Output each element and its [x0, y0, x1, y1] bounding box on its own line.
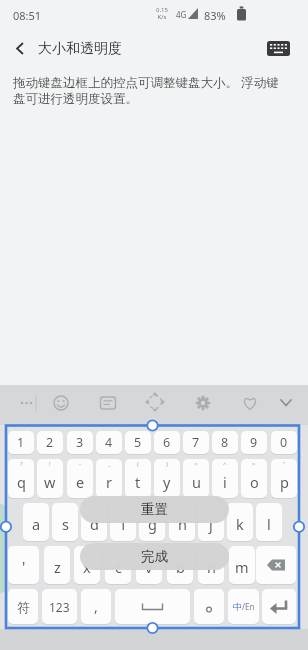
button[interactable]: 中 [228, 589, 259, 624]
button[interactable] [115, 589, 190, 624]
staticText: 4G [176, 9, 187, 20]
staticText: 0.15 K/s [156, 6, 168, 20]
staticText: 中 [233, 601, 242, 612]
button[interactable] [238, 390, 262, 418]
button[interactable]: m [229, 546, 255, 584]
staticText: w [44, 472, 56, 492]
staticText: 7 [192, 434, 200, 451]
staticText: b [176, 557, 185, 577]
button[interactable] [6, 36, 34, 60]
staticText: n [207, 557, 216, 577]
button[interactable]: 7 [183, 431, 209, 454]
button[interactable]: 8 [212, 431, 238, 454]
button[interactable]: _ [96, 459, 122, 498]
staticText: i [223, 472, 227, 492]
button[interactable] [191, 390, 215, 418]
button[interactable]: 1 [8, 431, 34, 454]
button[interactable]: ' [8, 546, 39, 584]
staticText: k [236, 514, 244, 534]
staticText: g [148, 514, 157, 534]
button[interactable]: g [139, 503, 165, 541]
staticText: ? [20, 460, 23, 468]
staticText: " [283, 460, 286, 468]
button[interactable]: 6 [154, 431, 180, 454]
button[interactable]: 0 [271, 431, 297, 454]
button[interactable]: v [136, 546, 162, 584]
button[interactable] [49, 390, 73, 418]
staticText: 3 [76, 434, 84, 451]
button[interactable]: x [74, 546, 100, 584]
staticText: m [235, 557, 249, 577]
button[interactable] [262, 589, 296, 624]
button[interactable]: d [81, 503, 107, 541]
button[interactable]: " [271, 459, 297, 498]
staticText: c [115, 557, 122, 577]
staticText: y [163, 472, 171, 492]
button[interactable]: 2 [37, 431, 63, 454]
button[interactable] [143, 390, 167, 418]
button[interactable]: , [81, 589, 111, 624]
staticText: u [192, 472, 201, 492]
button[interactable] [16, 390, 40, 418]
button[interactable]: b [167, 546, 193, 584]
button[interactable]: c [105, 546, 131, 584]
button[interactable]: 5 [125, 431, 151, 454]
button[interactable]: 3 [67, 431, 93, 454]
button[interactable] [256, 546, 296, 584]
button[interactable]: a [23, 503, 49, 541]
staticText: f [121, 514, 126, 534]
button[interactable] [263, 38, 295, 60]
staticText: s [62, 514, 69, 534]
staticText: 完成 [141, 548, 168, 565]
button[interactable]: < [183, 459, 209, 498]
staticText: z [54, 557, 61, 577]
staticText: x [83, 557, 91, 577]
button[interactable]: 重置 [80, 496, 229, 523]
button[interactable]: n [198, 546, 224, 584]
staticText: 83% [204, 8, 226, 23]
staticText: j [209, 514, 213, 534]
button[interactable]: ^ [212, 459, 238, 498]
staticText: l [267, 514, 271, 534]
button[interactable]: 符 [8, 589, 38, 624]
staticText: /En [242, 601, 255, 612]
button[interactable]: l [256, 503, 282, 541]
button[interactable]: 完成 [80, 543, 229, 570]
staticText: 盘可进行透明度设置。 [13, 91, 138, 107]
button[interactable] [274, 390, 298, 418]
button[interactable] [194, 589, 224, 624]
staticText: e [76, 472, 85, 492]
staticText: 2 [46, 434, 54, 451]
staticText: 4 [105, 434, 113, 451]
staticText: 5 [134, 434, 142, 451]
button[interactable]: f [110, 503, 136, 541]
button[interactable]: - [67, 459, 93, 498]
button[interactable]: 123 [42, 589, 77, 624]
staticText: ( [137, 460, 139, 468]
staticText: ! [49, 460, 51, 468]
button[interactable]: ! [37, 459, 63, 498]
button[interactable]: 4 [96, 431, 122, 454]
staticText: 拖动键盘边框上的控点可调整键盘大小。 浮动键 [13, 74, 279, 91]
button[interactable]: j [198, 503, 224, 541]
button[interactable]: ( [125, 459, 151, 498]
staticText: q [17, 472, 26, 492]
button[interactable]: s [52, 503, 78, 541]
button[interactable]: h [169, 503, 195, 541]
staticText: 符 [17, 599, 30, 615]
button[interactable]: ) [154, 459, 180, 498]
staticText: h [178, 514, 187, 534]
staticText: > [252, 460, 256, 468]
staticText: - [79, 460, 81, 468]
button[interactable]: z [44, 546, 70, 584]
staticText: 9 [250, 434, 258, 451]
button[interactable] [96, 390, 120, 418]
button[interactable]: k [227, 503, 253, 541]
button[interactable]: > [241, 459, 267, 498]
staticText: ' [22, 556, 26, 576]
button[interactable]: 9 [241, 431, 267, 454]
staticText: 8 [221, 434, 229, 451]
staticText: 6 [163, 434, 171, 451]
staticText: 大小和透明度 [38, 40, 122, 58]
button[interactable]: ? [8, 459, 34, 498]
